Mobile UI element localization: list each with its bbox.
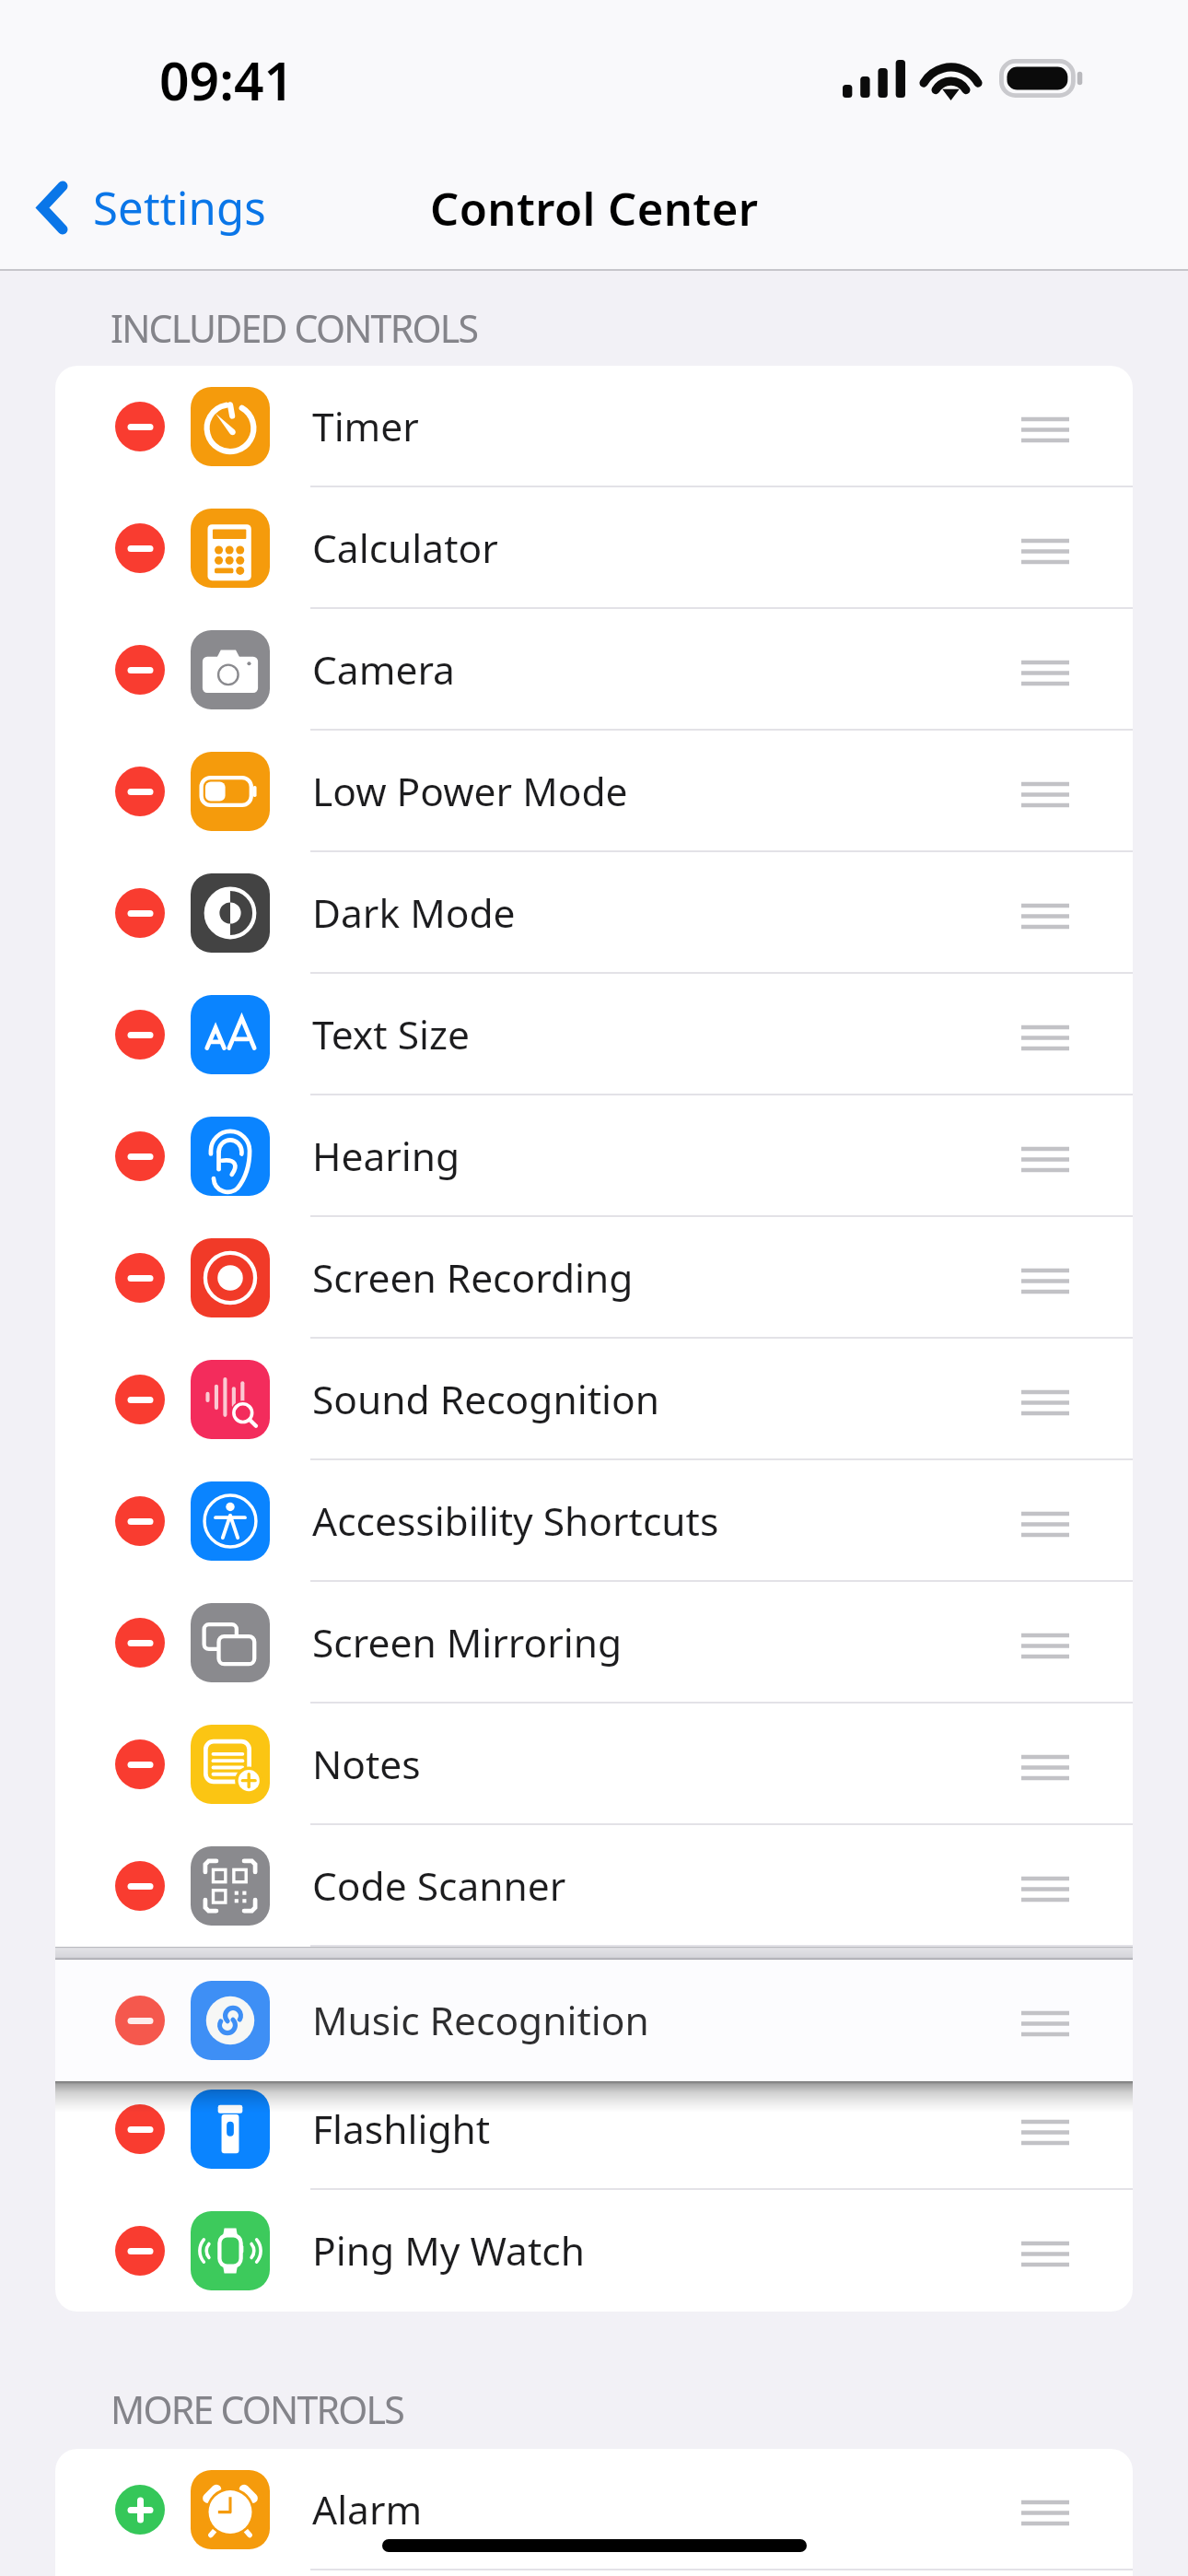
staticText: Control Center	[430, 178, 759, 240]
staticText: Flashlight	[312, 2102, 491, 2156]
staticText: Text Size	[312, 1008, 470, 1061]
staticText: Calculator	[312, 521, 498, 575]
other: Remove control	[115, 767, 165, 816]
other: Remove control	[115, 2104, 165, 2154]
other: Remove control	[115, 1739, 165, 1789]
staticText: Ping My Watch	[312, 2224, 585, 2277]
button[interactable]: Remove control	[55, 2068, 1133, 2190]
button[interactable]: Remove control	[55, 1339, 1133, 1460]
other: Add control	[115, 2485, 165, 2535]
staticText: 09:41	[159, 44, 295, 116]
staticText: Notes	[312, 1738, 421, 1791]
button[interactable]: Remove control	[55, 1582, 1133, 1704]
button[interactable]: Add control	[55, 2449, 1133, 2570]
button[interactable]: Settings	[22, 148, 285, 266]
other: Remove control	[115, 523, 165, 573]
other: Remove control	[115, 2226, 165, 2276]
other: Remove control	[115, 1618, 165, 1668]
staticText: Settings	[93, 177, 267, 239]
button[interactable]: Remove control	[55, 1460, 1133, 1582]
staticText: Alarm	[312, 2483, 423, 2536]
staticText: Camera	[312, 643, 455, 697]
button[interactable]: Remove control	[55, 852, 1133, 974]
button[interactable]: Remove control	[55, 366, 1133, 487]
button[interactable]: Remove control	[55, 974, 1133, 1095]
button[interactable]: Remove control	[55, 487, 1133, 609]
other: Remove control	[115, 1010, 165, 1060]
button[interactable]: Remove control	[55, 731, 1133, 852]
staticText: Screen Recording	[312, 1251, 634, 1305]
other: Remove control	[115, 1253, 165, 1303]
staticText: Sound Recognition	[312, 1373, 659, 1426]
other: Remove control	[115, 1861, 165, 1911]
staticText: MORE CONTROLS	[111, 2383, 404, 2435]
staticText: Code Scanner	[312, 1859, 566, 1913]
button[interactable]: Add control	[55, 2570, 1133, 2576]
staticText: Hearing	[312, 1130, 460, 1183]
button[interactable]: Remove control	[55, 1095, 1133, 1217]
button[interactable]: Remove control	[55, 1704, 1133, 1825]
button[interactable]: Remove control	[55, 1217, 1133, 1339]
staticText: Low Power Mode	[312, 765, 628, 818]
other: Remove control	[115, 888, 165, 938]
button[interactable]: Remove control	[55, 1960, 1133, 2081]
staticText: Screen Mirroring	[312, 1616, 623, 1669]
other: Remove control	[115, 1996, 165, 2045]
other: Remove control	[115, 645, 165, 695]
button[interactable]: Remove control	[55, 2190, 1133, 2312]
button[interactable]: Remove control	[55, 1825, 1133, 1947]
staticText: Accessibility Shortcuts	[312, 1494, 719, 1548]
staticText: Music Recognition	[312, 1994, 649, 2047]
other: Remove control	[115, 1496, 165, 1546]
other: Remove control	[115, 402, 165, 451]
staticText: Dark Mode	[312, 886, 516, 940]
other: Remove control	[115, 1375, 165, 1424]
staticText: Timer	[312, 400, 419, 453]
button[interactable]: Remove control	[55, 609, 1133, 731]
staticText: INCLUDED CONTROLS	[111, 302, 478, 354]
other: Remove control	[115, 1131, 165, 1181]
